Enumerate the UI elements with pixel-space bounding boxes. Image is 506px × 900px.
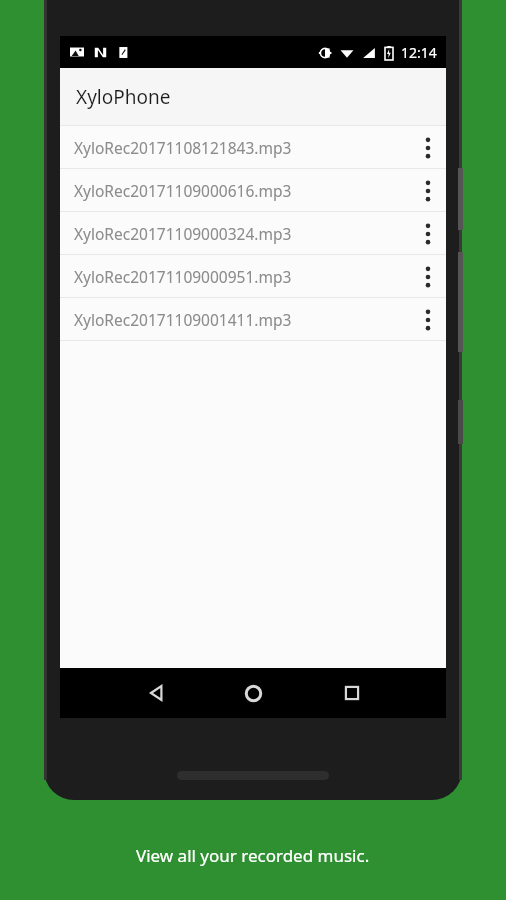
button[interactable]: Back xyxy=(128,668,184,718)
button[interactable]: XyloRec20171108121843.mp3 xyxy=(60,126,446,169)
button[interactable]: XyloRec20171109000324.mp3 xyxy=(60,212,446,255)
button[interactable]: More options xyxy=(410,212,446,255)
button[interactable]: XyloRec20171109001411.mp3 xyxy=(60,298,446,341)
button[interactable]: More options xyxy=(410,298,446,341)
staticText: 12:14 xyxy=(401,43,437,62)
staticText: XyloRec20171109000324.mp3 xyxy=(74,223,292,244)
staticText: XyloRec20171108121843.mp3 xyxy=(74,137,292,158)
button[interactable]: Recent apps xyxy=(324,668,380,718)
button[interactable]: XyloRec20171109000951.mp3 xyxy=(60,255,446,298)
staticText: XyloRec20171109001411.mp3 xyxy=(74,309,292,330)
button[interactable]: More options xyxy=(410,126,446,169)
staticText: XyloRec20171109000616.mp3 xyxy=(74,180,292,201)
staticText: XyloPhone xyxy=(76,84,171,110)
button[interactable]: More options xyxy=(410,255,446,298)
button[interactable]: XyloRec20171109000616.mp3 xyxy=(60,169,446,212)
staticText: XyloRec20171109000951.mp3 xyxy=(74,266,292,287)
button[interactable]: Home xyxy=(225,668,281,718)
staticText: View all your recorded music. xyxy=(136,844,370,867)
button[interactable]: More options xyxy=(410,169,446,212)
